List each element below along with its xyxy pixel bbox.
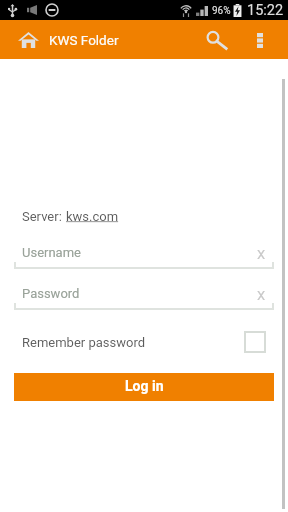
button[interactable]: Home	[9, 21, 47, 59]
button[interactable]: kws.com	[66, 209, 119, 224]
button[interactable]: Search	[198, 21, 236, 59]
staticText: Log in	[125, 378, 164, 394]
staticText: Password	[22, 286, 80, 301]
button[interactable]: More options	[243, 23, 277, 57]
staticText: 96%	[212, 5, 231, 17]
staticText: Username	[22, 245, 81, 260]
staticText: 15:22	[247, 2, 284, 19]
button[interactable]: Log in	[14, 373, 274, 401]
staticText: KWS Folder	[49, 32, 119, 48]
staticText: X	[257, 288, 266, 303]
staticText: Remember password	[22, 335, 146, 350]
staticText: X	[257, 247, 266, 262]
button[interactable]: Clear	[253, 287, 269, 303]
button[interactable]: Clear	[253, 246, 269, 262]
staticText: Server:	[22, 209, 66, 224]
button[interactable]: Remember password	[14, 330, 274, 354]
